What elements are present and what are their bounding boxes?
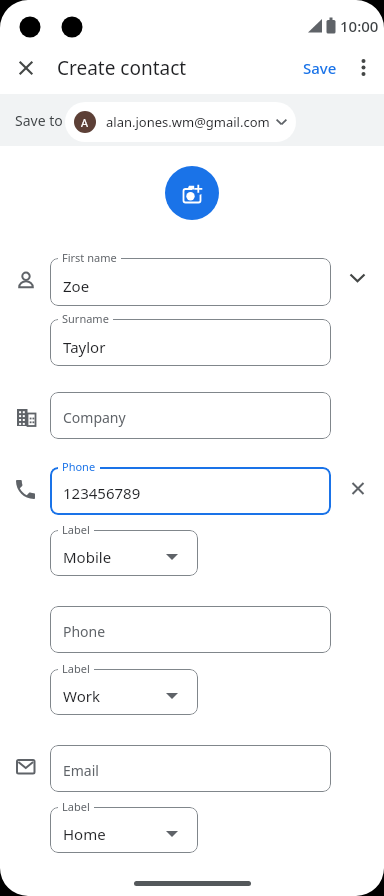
button[interactable]: Company [50, 392, 331, 439]
staticText: Phone [62, 459, 96, 474]
staticText: Home [63, 824, 106, 844]
button[interactable] [165, 166, 219, 220]
staticText: Label [62, 661, 90, 676]
button[interactable]: 123456789 [50, 467, 331, 515]
button[interactable]: A [65, 102, 296, 142]
button[interactable] [344, 474, 372, 502]
staticText: Taylor [63, 337, 106, 357]
button[interactable]: Taylor [50, 319, 331, 366]
button[interactable]: Phone [50, 606, 331, 653]
button[interactable]: Zoe [50, 258, 331, 306]
staticText: Zoe [63, 276, 90, 296]
staticText: Company [63, 408, 126, 427]
staticText: Label [62, 799, 90, 814]
staticText: Surname [62, 311, 109, 326]
staticText: First name [62, 250, 117, 265]
button[interactable]: Email [50, 745, 331, 792]
staticText: Label [62, 522, 90, 537]
staticText: 123456789 [63, 483, 141, 503]
button[interactable]: Work [50, 669, 198, 715]
button[interactable] [343, 264, 371, 292]
button[interactable]: Save [297, 45, 343, 91]
staticText: Create contact [57, 55, 187, 81]
staticText: A [81, 115, 89, 130]
staticText: Save to [15, 111, 63, 130]
staticText: Save [303, 58, 337, 78]
button[interactable]: Mobile [50, 530, 198, 576]
staticText: Work [63, 686, 100, 706]
staticText: Phone [63, 622, 106, 641]
button[interactable]: Home [50, 807, 198, 853]
button[interactable] [350, 54, 377, 81]
staticText: Email [63, 761, 99, 780]
staticText: 10:00 [340, 16, 379, 36]
staticText: alan.jones.wm@gmail.com [106, 113, 270, 131]
staticText: Mobile [63, 547, 112, 567]
button[interactable] [12, 54, 40, 82]
